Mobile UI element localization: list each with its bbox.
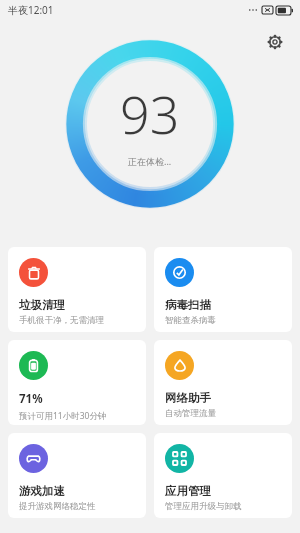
staticText: 提升游戏网络稳定性 [19, 501, 96, 512]
staticText: 游戏加速 [19, 484, 65, 498]
staticText: 网络助手 [165, 391, 211, 405]
staticText: 预计可用11小时30分钟 [19, 410, 107, 422]
staticText: 正在体检... [128, 155, 172, 167]
staticText: 智能查杀病毒 [165, 315, 216, 326]
button[interactable]: 游戏加速 [8, 433, 146, 518]
button[interactable]: Settings [260, 27, 290, 57]
staticText: 管理应用升级与卸载 [165, 501, 242, 512]
button[interactable]: 病毒扫描 [154, 247, 292, 332]
staticText: 手机很干净，无需清理 [19, 315, 104, 326]
staticText: 71% [19, 391, 43, 407]
staticText: 垃圾清理 [19, 298, 65, 312]
staticText: 自动管理流量 [165, 408, 216, 419]
button[interactable]: 垃圾清理 [8, 247, 146, 332]
button[interactable]: 应用管理 [154, 433, 292, 518]
staticText: 半夜12:01 [8, 3, 54, 17]
staticText: 93 [120, 78, 180, 149]
button[interactable]: 71% [8, 340, 146, 425]
staticText: 病毒扫描 [165, 298, 211, 312]
staticText: 应用管理 [165, 484, 211, 498]
button[interactable]: 网络助手 [154, 340, 292, 425]
